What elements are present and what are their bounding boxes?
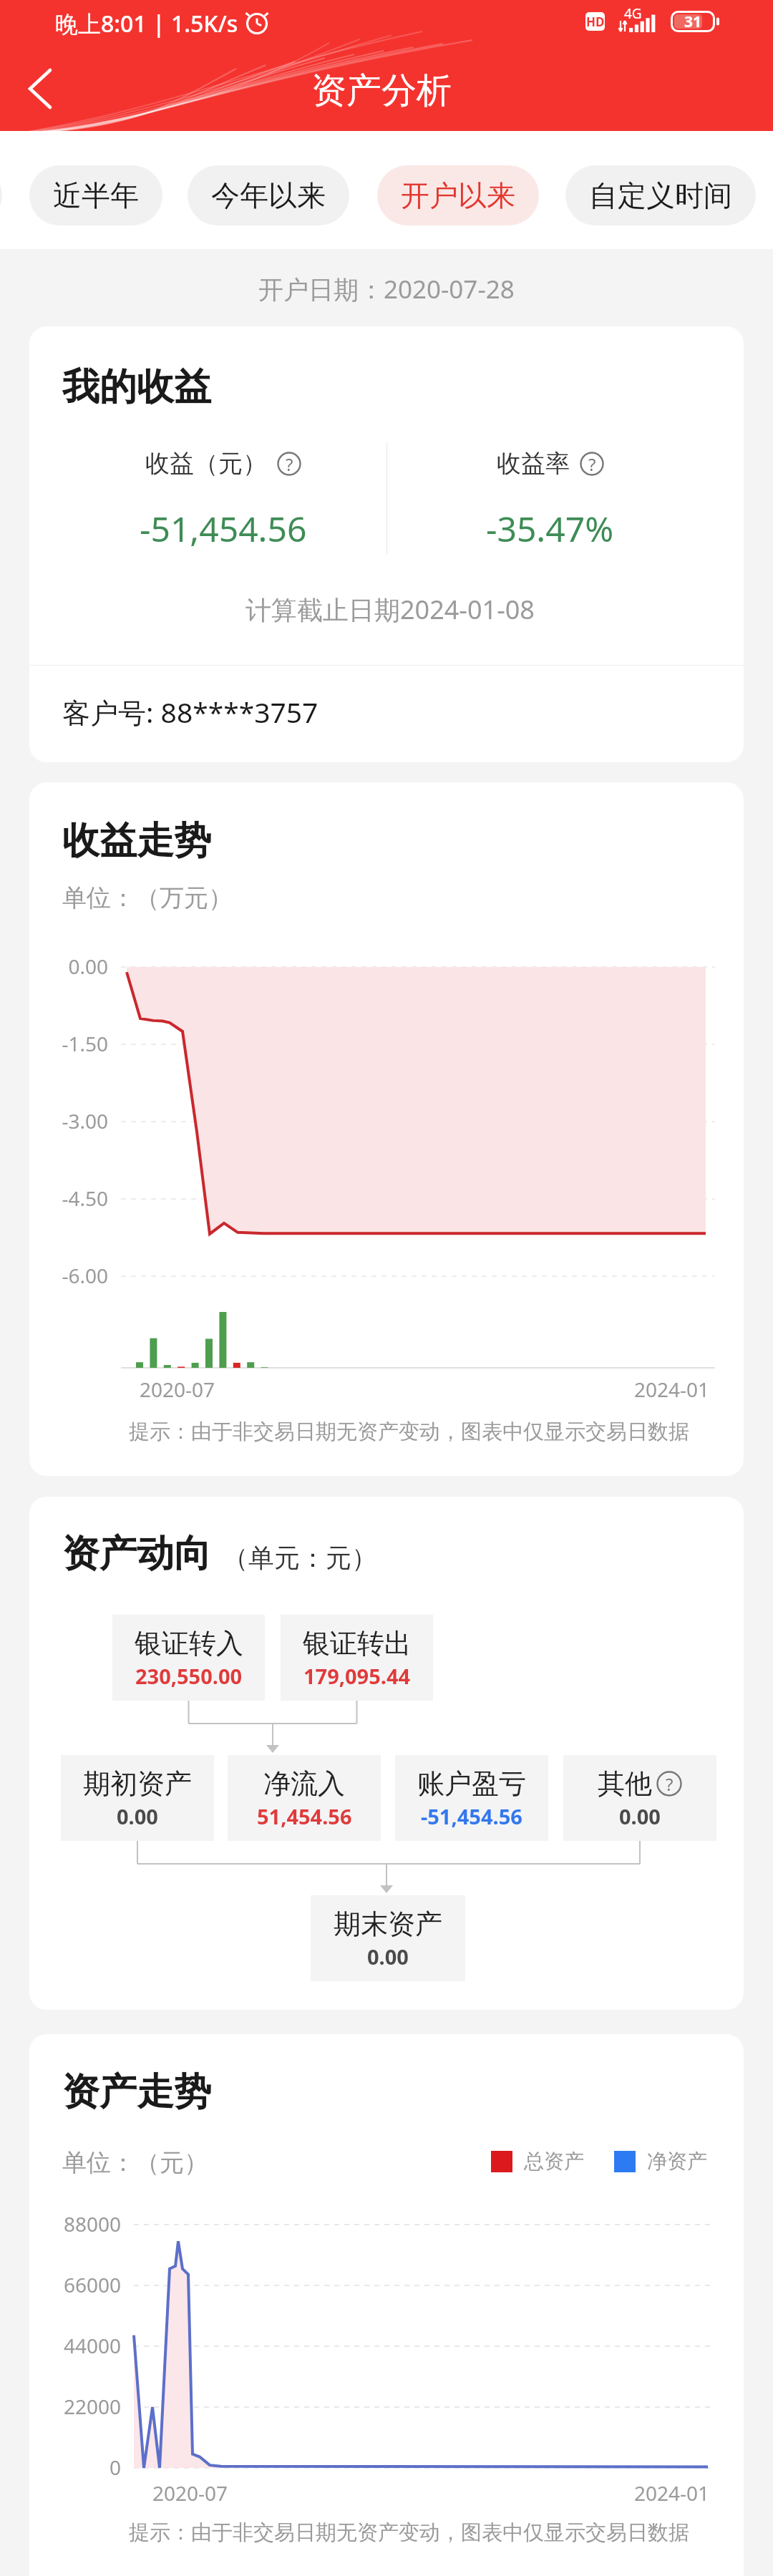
- staticText: 2024-01: [634, 2479, 710, 2507]
- button[interactable]: 近一月: [0, 165, 2, 225]
- staticText: 单位：（元）: [62, 2147, 208, 2178]
- staticText: 提示：由于非交易日期无资产变动，图表中仅显示交易日数据: [129, 1419, 689, 1445]
- staticText: 2020-07: [140, 1376, 215, 1403]
- button[interactable]: 今年以来: [188, 165, 349, 225]
- staticText: 0.00: [29, 953, 108, 980]
- staticText: 31: [684, 11, 702, 32]
- staticText: 51,454.56: [257, 1802, 352, 1830]
- button[interactable]: 自定义时间: [565, 165, 756, 225]
- staticText: 近半年: [53, 178, 139, 213]
- staticText: -51,454.56: [140, 505, 307, 552]
- staticText: 179,095.44: [303, 1662, 411, 1690]
- button[interactable]: Back: [11, 60, 69, 117]
- staticText: 净资产: [647, 2149, 707, 2174]
- staticText: 44000: [29, 2332, 121, 2359]
- staticText: 自定义时间: [589, 178, 732, 213]
- staticText: 22000: [29, 2393, 121, 2420]
- staticText: 88000: [29, 2210, 121, 2237]
- staticText: 其他: [598, 1766, 652, 1801]
- staticText: 66000: [29, 2271, 121, 2298]
- button[interactable]: 开户以来: [377, 165, 539, 225]
- staticText: 0.00: [117, 1802, 158, 1830]
- staticText: 2020-07: [152, 2479, 228, 2507]
- staticText: HD: [586, 14, 605, 30]
- staticText: （单元：元）: [223, 1542, 377, 1574]
- staticText: 收益走势: [62, 817, 211, 865]
- staticText: 资产分析: [311, 69, 452, 113]
- staticText: 银证转出: [303, 1626, 412, 1661]
- staticText: -4.50: [29, 1185, 108, 1212]
- staticText: -35.47%: [486, 505, 614, 552]
- staticText: 银证转入: [135, 1626, 243, 1661]
- button[interactable]: 近半年: [29, 165, 162, 225]
- staticText: -51,454.56: [421, 1802, 522, 1830]
- staticText: 0: [29, 2454, 121, 2481]
- staticText: 开户以来: [401, 178, 515, 213]
- staticText: -3.00: [29, 1107, 108, 1134]
- staticText: 开户日期：2020-07-28: [258, 272, 515, 303]
- staticText: 总资产: [524, 2149, 584, 2174]
- staticText: 客户号: 88****3757: [62, 693, 319, 731]
- staticText: 今年以来: [211, 178, 326, 213]
- staticText: ?: [286, 452, 293, 476]
- staticText: 0.00: [367, 1943, 409, 1970]
- staticText: 收益（元）: [145, 448, 267, 479]
- staticText: ?: [666, 1772, 674, 1796]
- staticText: ?: [588, 452, 596, 476]
- staticText: 收益率: [497, 448, 570, 479]
- staticText: 期末资产: [334, 1907, 442, 1941]
- staticText: -6.00: [29, 1262, 108, 1289]
- staticText: 单位：（万元）: [62, 883, 233, 913]
- staticText: 资产走势: [62, 2069, 211, 2116]
- staticText: 账户盈亏: [417, 1766, 526, 1801]
- staticText: 提示：由于非交易日期无资产变动，图表中仅显示交易日数据: [129, 2519, 689, 2546]
- staticText: 2024-01: [634, 1376, 710, 1403]
- staticText: 我的收益: [62, 364, 211, 411]
- staticText: 期初资产: [83, 1766, 192, 1801]
- staticText: 净流入: [263, 1766, 345, 1801]
- staticText: 晚上8:01 | 1.5K/s: [55, 8, 238, 39]
- staticText: 计算截止日期2024-01-08: [245, 592, 535, 627]
- staticText: 0.00: [619, 1802, 661, 1830]
- staticText: 4G: [624, 4, 642, 23]
- staticText: -1.50: [29, 1030, 108, 1057]
- staticText: 230,550.00: [135, 1662, 243, 1690]
- staticText: 资产动向: [62, 1530, 211, 1578]
